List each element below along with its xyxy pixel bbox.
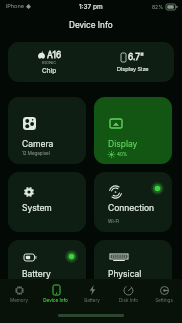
staticText: Connection — [108, 203, 155, 213]
button[interactable]: Battery — [8, 240, 86, 300]
staticText: System — [22, 203, 52, 213]
staticText: Memory — [10, 298, 28, 304]
staticText: Display — [108, 139, 138, 149]
button[interactable]: Battery — [74, 279, 110, 309]
staticText: Device Info — [69, 20, 113, 30]
staticText: Camera — [22, 139, 54, 149]
staticText: Wi-Fi — [108, 219, 120, 224]
staticText: Disk Info — [119, 298, 138, 304]
staticText: Settings — [155, 298, 173, 304]
staticText: Chip — [42, 67, 57, 75]
staticText: Device Info — [43, 298, 68, 304]
staticText: 12 Megapixel — [22, 151, 50, 156]
button[interactable]: Connection, Wi-Fi — [94, 172, 172, 232]
staticText: Physical — [108, 269, 142, 279]
button[interactable]: A16 — [8, 42, 174, 82]
button[interactable]: Settings — [146, 279, 182, 309]
button[interactable]: Display, 40 percent brightness — [94, 97, 172, 164]
staticText: 6.7" — [128, 52, 145, 62]
staticText: Battery — [84, 298, 100, 304]
staticText: 40% — [117, 152, 128, 157]
button[interactable]: System — [8, 172, 86, 232]
button[interactable]: Camera, 12 Megapixel — [8, 97, 86, 164]
button[interactable]: Device Info — [37, 279, 74, 309]
staticText: Battery — [22, 269, 51, 279]
button[interactable]: Physical memory — [94, 240, 172, 300]
staticText: Display Size — [117, 66, 149, 73]
staticText: 1:37 pm — [79, 3, 103, 11]
button[interactable]: Disk Info — [110, 279, 146, 309]
staticText: 82% — [152, 4, 164, 10]
button[interactable]: Memory — [0, 279, 37, 309]
staticText: BIONIC — [42, 60, 57, 65]
staticText: A16 — [47, 50, 62, 60]
staticText: iPhone — [6, 3, 24, 10]
